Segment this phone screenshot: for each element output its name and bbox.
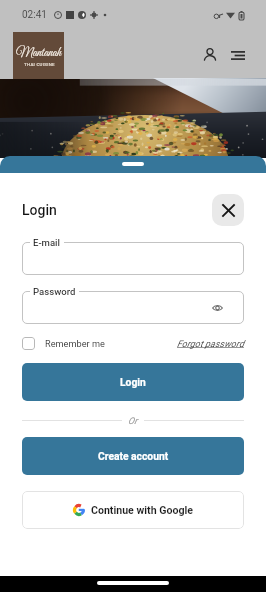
button[interactable]: Password (22, 291, 244, 324)
staticText: Forgot password (177, 338, 244, 349)
staticText: Continue with Google (91, 504, 194, 516)
button[interactable]: Account (198, 43, 222, 67)
button[interactable]: Menu (226, 43, 250, 67)
staticText: Or (128, 415, 138, 426)
staticText: Login (22, 202, 57, 218)
staticText: Mantanah (16, 45, 62, 61)
button[interactable]: Show password (209, 300, 225, 316)
staticText: THAI CUISINE (24, 62, 55, 67)
staticText: Create account (98, 450, 169, 462)
staticText: Remember me (45, 338, 105, 349)
staticText: Password (33, 286, 76, 297)
staticText: Login (120, 376, 146, 388)
button[interactable]: Create account (22, 437, 244, 475)
button[interactable]: Mantanah Thai Cuisine (13, 32, 64, 79)
button[interactable]: Remember me (22, 337, 105, 350)
button[interactable]: E-mail (22, 242, 244, 275)
button[interactable]: Login (22, 363, 244, 401)
staticText: E-mail (33, 237, 61, 248)
button[interactable]: Forgot password (177, 338, 244, 349)
button[interactable]: Close (212, 194, 244, 226)
staticText: 02:41 (22, 9, 47, 21)
button[interactable]: Continue with Google (22, 491, 244, 529)
